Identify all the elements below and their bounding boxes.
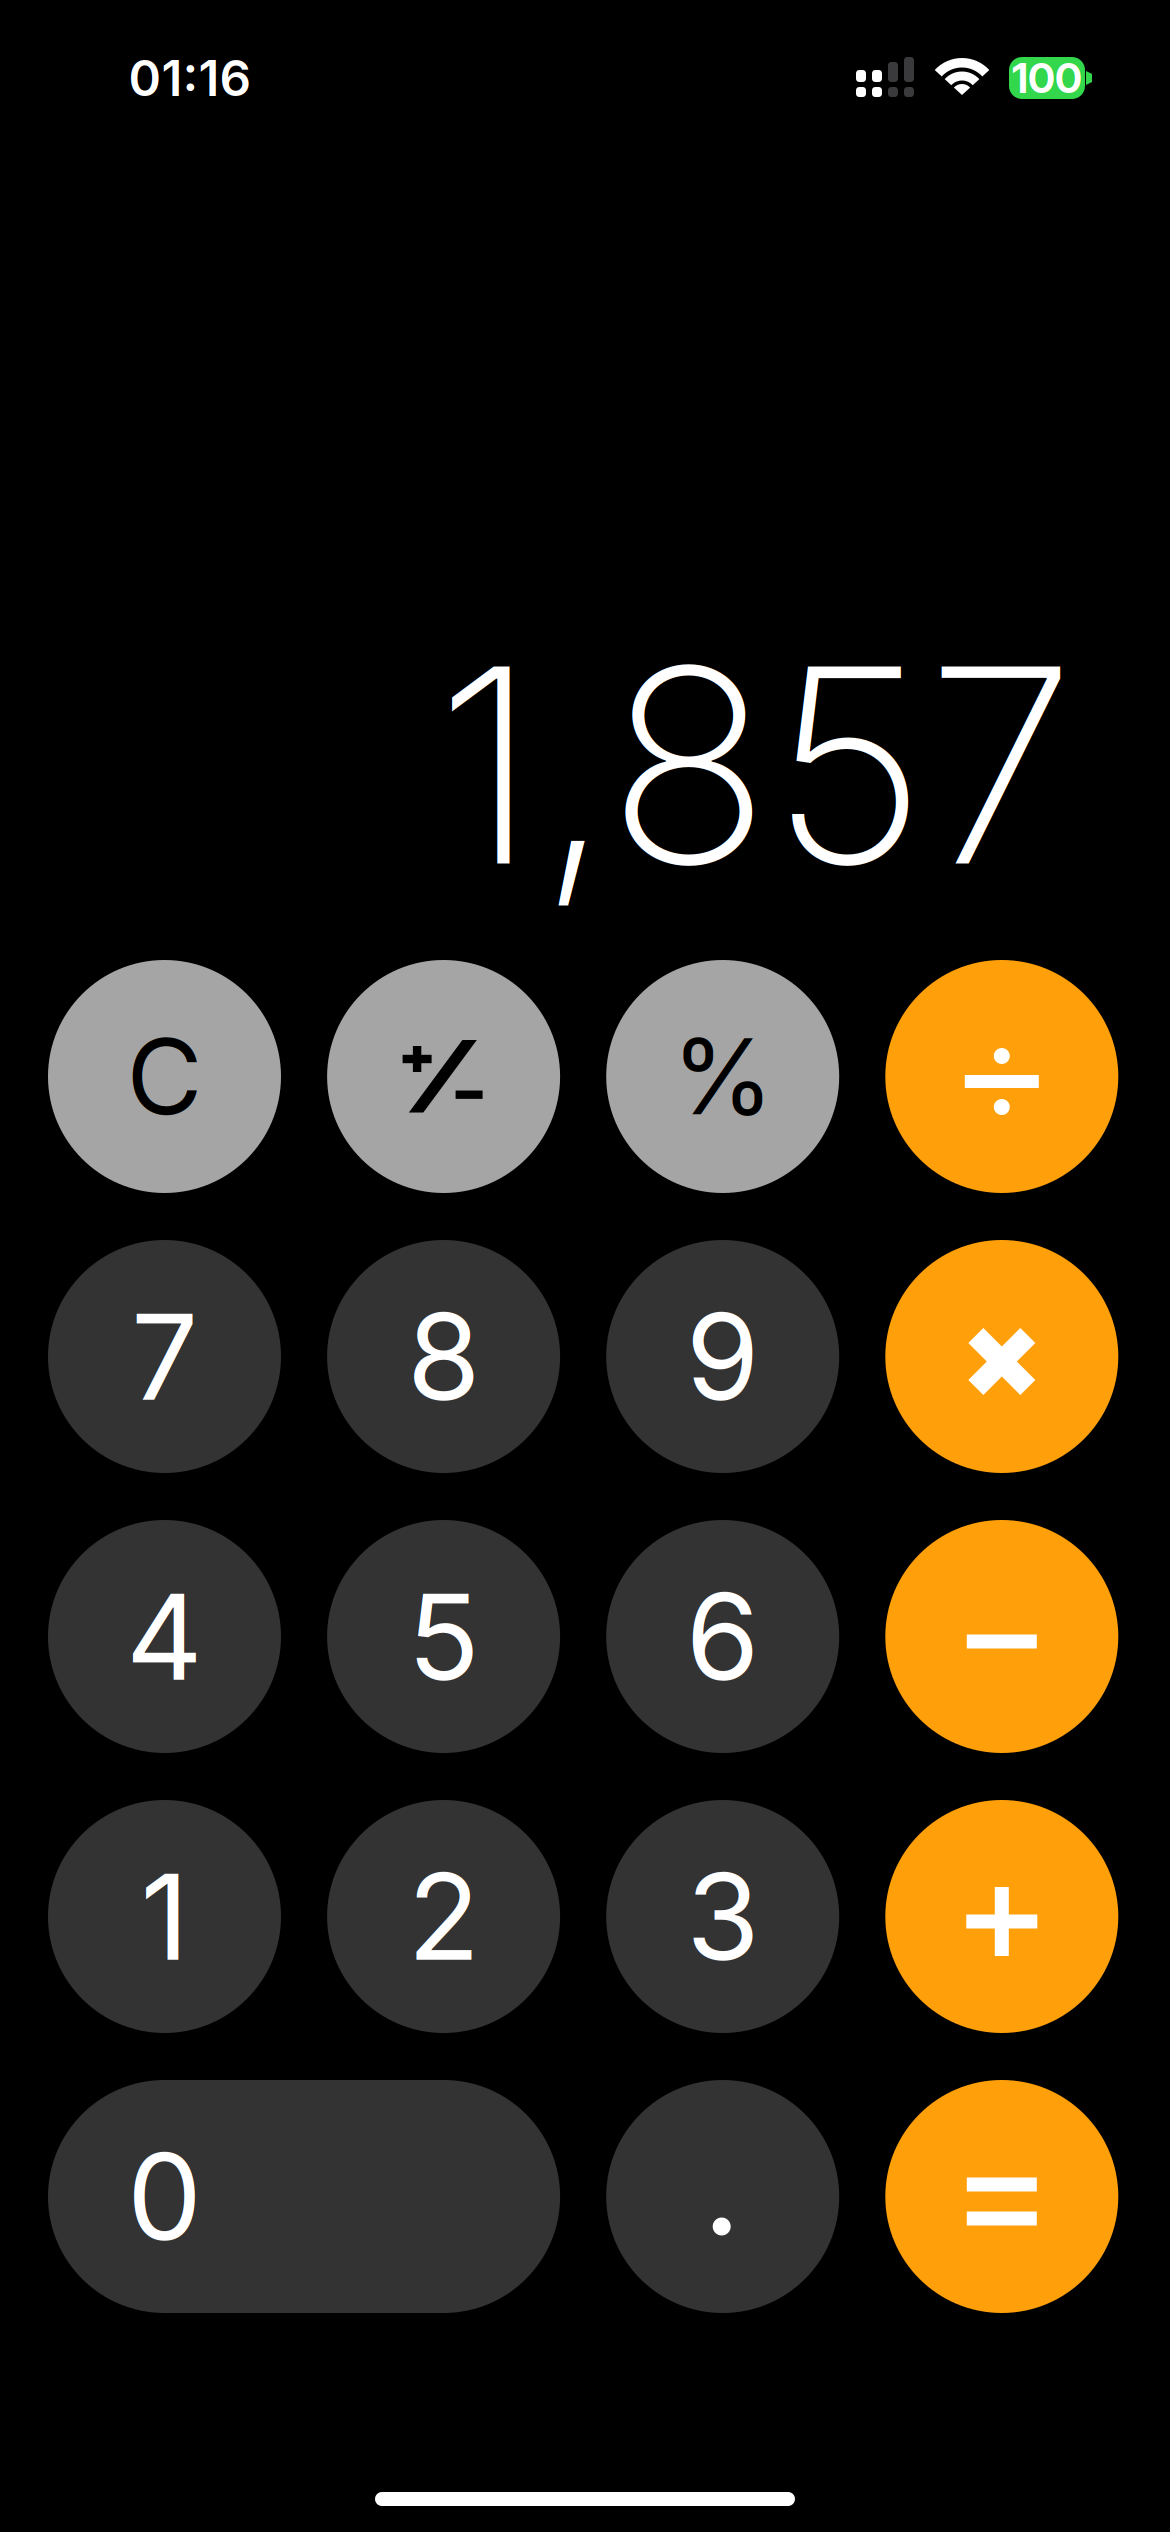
staticText: 5 [408, 1565, 480, 1708]
staticText: 2 [408, 1845, 480, 1988]
staticText: 9 [686, 1285, 760, 1428]
staticText: 0 [127, 2125, 202, 2268]
staticText: 1 [140, 1845, 188, 1988]
button[interactable]: 3 [606, 1800, 839, 2033]
button[interactable]: Decimal point [606, 2080, 839, 2313]
button[interactable]: 9 [606, 1240, 839, 1473]
staticText: 8 [407, 1285, 480, 1428]
button[interactable]: C [48, 960, 281, 1193]
button[interactable]: 4 [48, 1520, 281, 1753]
button[interactable]: Equals [885, 2080, 1118, 2313]
staticText: 1,857 [435, 601, 1076, 929]
button[interactable]: 7 [48, 1240, 281, 1473]
staticText: 4 [126, 1565, 203, 1708]
staticText: 6 [686, 1565, 760, 1708]
button[interactable]: 0 [48, 2080, 560, 2313]
staticText: 3 [686, 1845, 759, 1988]
button[interactable]: Divide [885, 960, 1118, 1193]
staticText: 100 [1012, 53, 1082, 103]
staticText: C [126, 1014, 202, 1139]
button[interactable]: 2 [327, 1800, 560, 2033]
button[interactable]: % [606, 960, 839, 1193]
button[interactable]: 8 [327, 1240, 560, 1473]
staticText: 7 [131, 1285, 198, 1428]
staticText: % [672, 1014, 774, 1139]
button[interactable]: Multiply [885, 1240, 1118, 1473]
button[interactable]: Plus Minus [327, 960, 560, 1193]
staticText: 01:16 [128, 48, 251, 108]
button[interactable]: Plus [885, 1800, 1118, 2033]
button[interactable]: 5 [327, 1520, 560, 1753]
button[interactable]: 1 [48, 1800, 281, 2033]
button[interactable]: Minus [885, 1520, 1118, 1753]
button[interactable]: 6 [606, 1520, 839, 1753]
